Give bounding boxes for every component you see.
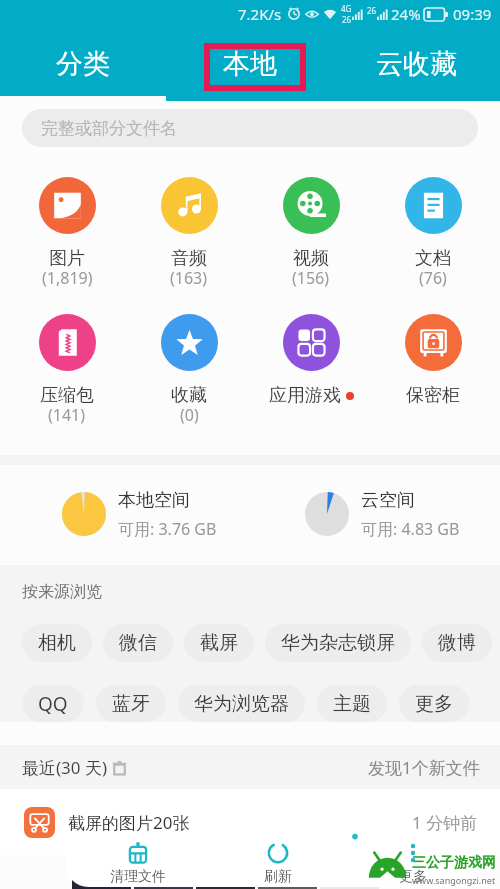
staticText: 最近(30 天) [22, 756, 108, 779]
staticText: 本地 [223, 47, 277, 81]
button[interactable]: 保密柜 [378, 314, 488, 407]
button[interactable]: 微信 [103, 624, 173, 662]
other: More options [352, 834, 358, 860]
staticText: 完整或部分文件名 [41, 118, 177, 139]
button[interactable]: 更多 [399, 685, 469, 722]
staticText: 云收藏 [376, 47, 457, 81]
button[interactable]: 主题 [317, 685, 387, 722]
staticText: 可用: 4.83 GB [361, 518, 460, 540]
staticText: (163) [170, 267, 208, 289]
staticText: 云空间 [361, 489, 415, 512]
button[interactable]: 图片 [12, 177, 122, 292]
staticText: 相机 [38, 631, 76, 655]
staticText: 三公子游戏网 [412, 854, 496, 872]
staticText: 视频 [293, 247, 329, 270]
button[interactable]: 云空间 [250, 488, 500, 540]
button[interactable]: 分类 [0, 27, 166, 101]
staticText: 更多 [415, 692, 453, 716]
button[interactable]: 本地 [166, 27, 333, 101]
staticText: 截屏 [200, 631, 238, 655]
button[interactable]: 刷新 [210, 840, 345, 887]
staticText: 华为杂志锁屏 [281, 631, 395, 655]
staticText: 26 [342, 14, 352, 25]
button[interactable]: 华为杂志锁屏 [265, 624, 411, 662]
button[interactable]: 文档 [378, 177, 488, 292]
staticText: 26 [367, 5, 377, 16]
button[interactable]: 截屏 [184, 624, 254, 662]
button[interactable]: 本地空间 [0, 488, 250, 540]
staticText: (156) [292, 267, 330, 289]
staticText: 按来源浏览 [22, 582, 102, 602]
button[interactable]: 视频 [256, 177, 366, 292]
button[interactable]: QQ [22, 685, 84, 722]
staticText: QQ [38, 691, 68, 717]
staticText: 清理文件 [110, 868, 166, 886]
staticText: 音频 [171, 247, 207, 270]
staticText: 截屏的图片20张 [68, 811, 190, 834]
staticText: 1 分钟前 [412, 811, 478, 834]
button[interactable]: 华为浏览器 [178, 685, 305, 722]
staticText: 4G [341, 3, 352, 14]
button[interactable]: 蓝牙 [96, 685, 166, 722]
staticText: (1,819) [42, 267, 93, 289]
staticText: (141) [48, 404, 86, 426]
staticText: www.sangongzi.net [412, 874, 496, 886]
staticText: 24% [391, 4, 421, 24]
button[interactable]: 相机 [22, 624, 92, 662]
staticText: 可用: 3.76 GB [118, 518, 217, 540]
staticText: 主题 [333, 692, 371, 716]
staticText: 微信 [119, 631, 157, 655]
staticText: 09:39 [453, 4, 492, 24]
staticText: 蓝牙 [112, 692, 150, 716]
button[interactable]: 截屏的图片20张 [0, 789, 500, 855]
button[interactable]: 收藏 [134, 314, 244, 429]
staticText: 7.2K/s [238, 4, 282, 24]
staticText: 本地空间 [118, 489, 190, 512]
button[interactable]: 压缩包 [12, 314, 122, 429]
button[interactable]: 清理文件 [65, 840, 210, 887]
staticText: 收藏 [171, 384, 207, 407]
staticText: 保密柜 [406, 384, 460, 407]
staticText: 刷新 [264, 868, 292, 886]
staticText: (0) [180, 404, 199, 426]
button[interactable]: 应用游戏 [256, 314, 366, 407]
staticText: (76) [419, 267, 447, 289]
other: Clear recent [111, 759, 128, 776]
button[interactable]: 完整或部分文件名 [22, 109, 478, 147]
staticText: 文档 [415, 247, 451, 270]
button[interactable]: 更多 [345, 840, 480, 887]
button[interactable]: 云收藏 [333, 27, 500, 101]
staticText: 更多 [399, 868, 427, 886]
staticText: 发现1个新文件 [368, 756, 480, 779]
button[interactable]: 音频 [134, 177, 244, 292]
button[interactable]: 微博 [422, 624, 492, 662]
staticText: 图片 [49, 247, 85, 270]
staticText: 华为浏览器 [194, 692, 289, 716]
staticText: 微博 [438, 631, 476, 655]
staticText: 分类 [56, 47, 110, 81]
staticText: 应用游戏 [269, 384, 341, 407]
staticText: 压缩包 [40, 384, 94, 407]
